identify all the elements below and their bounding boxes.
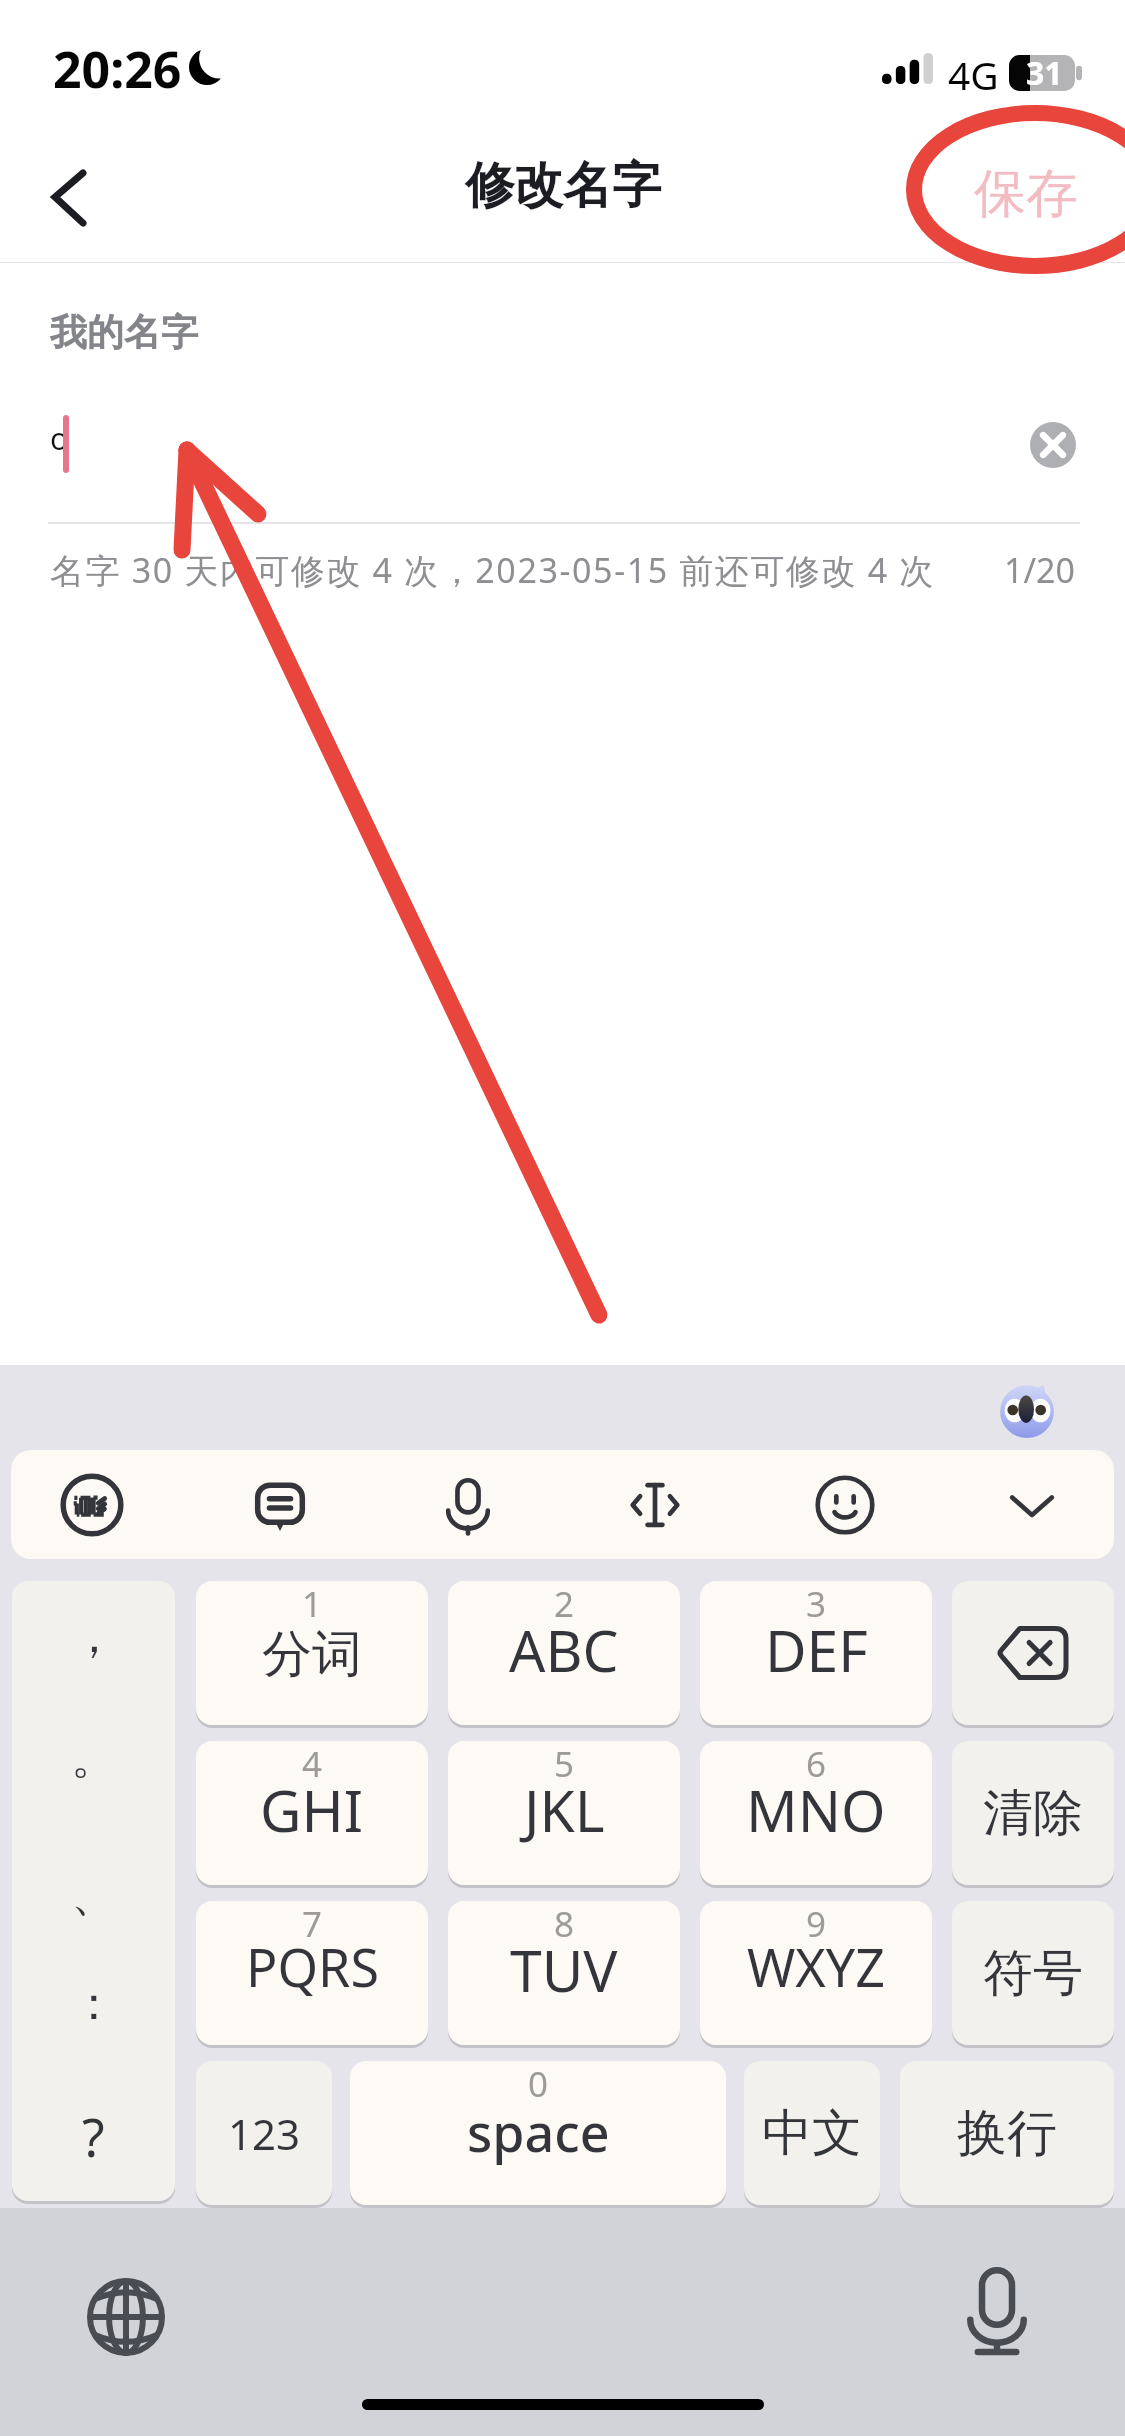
staticText: DEF [765, 1611, 868, 1689]
staticText: space [467, 2096, 610, 2167]
button[interactable]: Xunfei assistant [38, 1450, 146, 1559]
staticText: 8 [554, 1901, 575, 1948]
button[interactable]: ， [12, 1581, 175, 1699]
button[interactable]: Hide keyboard [978, 1450, 1086, 1559]
staticText: GHI [260, 1771, 364, 1849]
staticText: 6 [806, 1741, 827, 1788]
staticText: 中文 [762, 2102, 862, 2165]
button[interactable]: 4 [196, 1741, 428, 1885]
button[interactable]: 1 [196, 1581, 428, 1725]
button[interactable]: Voice input [414, 1450, 522, 1559]
staticText: 1 [302, 1581, 323, 1628]
button[interactable]: 8 [448, 1901, 680, 2045]
button[interactable]: 符号 [952, 1901, 1114, 2045]
button[interactable]: 、 [12, 1833, 175, 1957]
staticText: 换行 [957, 2102, 1057, 2165]
button[interactable]: 3 [700, 1581, 932, 1725]
button[interactable]: Candidates [226, 1450, 334, 1559]
staticText: ? [82, 2101, 105, 2172]
button[interactable]: 。 [12, 1696, 175, 1820]
button[interactable]: 中文 [744, 2061, 880, 2205]
button[interactable]: Emoji [791, 1450, 899, 1559]
button[interactable]: 123 [196, 2061, 332, 2205]
staticText: ： [71, 1975, 117, 2033]
staticText: 1/20 [1004, 547, 1075, 593]
button[interactable]: 9 [700, 1901, 932, 2045]
staticText: 分词 [262, 1623, 362, 1686]
button[interactable]: Move cursor [601, 1450, 709, 1559]
button[interactable]: 保存 [956, 136, 1096, 252]
staticText: o [50, 418, 69, 459]
staticText: 、 [71, 1866, 117, 1924]
button[interactable]: 2 [448, 1581, 680, 1725]
staticText: 。 [71, 1729, 117, 1787]
staticText: 31 [1026, 51, 1063, 95]
staticText: 0 [528, 2061, 549, 2108]
staticText: 20:26 [53, 35, 182, 103]
staticText: 3 [806, 1581, 827, 1628]
button[interactable]: Dictation [949, 2263, 1045, 2359]
button[interactable]: 5 [448, 1741, 680, 1885]
staticText: 123 [228, 2105, 301, 2162]
button[interactable]: 清除 [952, 1741, 1114, 1885]
button[interactable]: Backspace [952, 1581, 1114, 1725]
staticText: 我的名字 [50, 309, 198, 356]
button[interactable]: Switch language [78, 2269, 174, 2365]
staticText: 保存 [974, 161, 1078, 227]
staticText: 2 [554, 1581, 575, 1628]
staticText: ， [71, 1608, 117, 1666]
button[interactable]: ? [12, 2074, 175, 2198]
staticText: 符号 [983, 1942, 1083, 2005]
button[interactable]: ： [12, 1942, 175, 2066]
staticText: JKL [524, 1771, 605, 1849]
button[interactable]: 换行 [900, 2061, 1114, 2205]
staticText: MNO [746, 1771, 886, 1849]
button[interactable]: 6 [700, 1741, 932, 1885]
staticText: 修改名字 [465, 155, 661, 217]
staticText: PQRS [246, 1931, 379, 2002]
staticText: 4G [948, 48, 999, 101]
staticText: 清除 [983, 1782, 1083, 1845]
button[interactable]: 0 [350, 2061, 726, 2205]
button[interactable]: Clear text [1030, 422, 1076, 468]
staticText: ABC [509, 1611, 619, 1689]
staticText: 4 [302, 1741, 323, 1788]
staticText: TUV [510, 1931, 618, 2009]
staticText: 9 [806, 1901, 827, 1948]
staticText: 7 [302, 1901, 323, 1948]
staticText: WXYZ [747, 1931, 886, 2002]
button[interactable]: Back [20, 132, 118, 230]
button[interactable]: 7 [196, 1901, 428, 2045]
staticText: 5 [554, 1741, 575, 1788]
staticText: 名字 30 天内可修改 4 次，2023-05-15 前还可修改 4 次 [50, 547, 935, 593]
